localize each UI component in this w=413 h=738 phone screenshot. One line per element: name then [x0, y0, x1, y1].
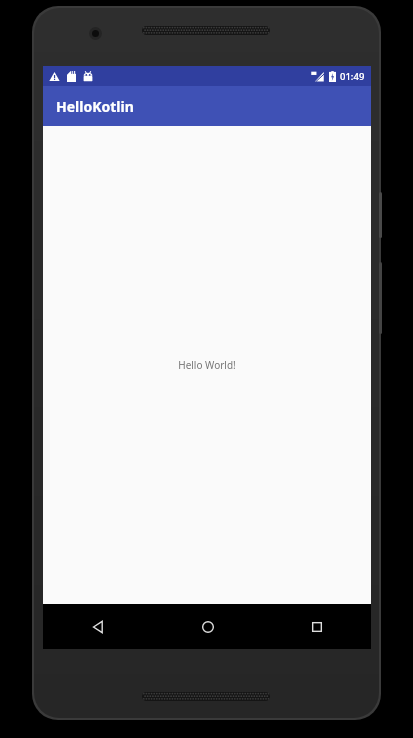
button[interactable]: Home — [153, 604, 262, 649]
button[interactable]: Back — [43, 604, 153, 649]
staticText: HelloKotlin — [56, 97, 134, 116]
staticText: 01:49 — [340, 70, 365, 83]
button[interactable]: Recent apps — [262, 604, 371, 649]
staticText: Hello World! — [178, 358, 236, 372]
button[interactable]: HelloKotlin — [43, 86, 371, 126]
